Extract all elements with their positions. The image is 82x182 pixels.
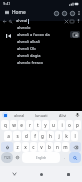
- staticText: Home: [12, 9, 26, 16]
- button[interactable]: Search: [69, 152, 81, 163]
- staticText: alveolo fresco: [17, 60, 43, 65]
- button[interactable]: e: [18, 120, 25, 130]
- button[interactable]: Previous track: [3, 32, 13, 40]
- staticText: k: [65, 133, 68, 139]
- staticText: z: [16, 144, 19, 150]
- staticText: e: [20, 122, 23, 128]
- button[interactable]: Home: [28, 166, 55, 182]
- staticText: q: [4, 122, 7, 128]
- button[interactable]: Recents: [55, 166, 82, 182]
- button[interactable]: alveolo fresco: [0, 59, 82, 66]
- button[interactable]: b: [46, 142, 53, 152]
- staticText: j: [58, 133, 60, 139]
- button[interactable]: Gboard settings: [2, 112, 8, 118]
- button[interactable]: Clear: [63, 18, 69, 24]
- button[interactable]: Voice search: [75, 18, 81, 24]
- button[interactable]: a: [4, 131, 12, 141]
- button[interactable]: More options: [76, 10, 81, 15]
- button[interactable]: n: [54, 142, 61, 152]
- staticText: alveal: [16, 18, 28, 24]
- button[interactable]: i: [58, 120, 65, 130]
- staticText: r: [29, 122, 31, 128]
- button[interactable]: o: [66, 120, 73, 130]
- button[interactable]: Menu: [3, 9, 10, 16]
- button[interactable]: Shift: [1, 142, 13, 152]
- staticText: i: [61, 122, 63, 128]
- staticText: alveoli Ob: [17, 46, 36, 51]
- staticText: d: [25, 133, 28, 139]
- button[interactable]: t: [34, 120, 41, 130]
- button[interactable]: v: [38, 142, 45, 152]
- staticText: v: [40, 144, 43, 150]
- button[interactable]: l: [71, 131, 78, 141]
- staticText: Alivi: [59, 113, 67, 118]
- button[interactable]: Account 2: [68, 9, 76, 17]
- staticText: alveoli dagia: [17, 53, 41, 58]
- button[interactable]: Picture in picture: [70, 31, 80, 38]
- button[interactable]: alveoli dagia: [0, 52, 82, 59]
- button[interactable]: g: [39, 131, 46, 141]
- staticText: x: [24, 144, 27, 150]
- button[interactable]: u: [50, 120, 57, 130]
- staticText: w: [12, 122, 16, 128]
- button[interactable]: j: [55, 131, 62, 141]
- button[interactable]: Voice input: [74, 112, 80, 118]
- staticText: ?123: [4, 156, 11, 160]
- button[interactable]: Account 0: [52, 9, 60, 17]
- button[interactable]: alveoli a fuoco da: [0, 31, 82, 38]
- button[interactable]: q: [1, 120, 9, 130]
- button[interactable]: Keyboard: [69, 18, 75, 24]
- button[interactable]: z: [14, 142, 21, 152]
- staticText: y: [44, 122, 47, 128]
- staticText: English: [36, 156, 47, 160]
- staticText: 9:41: [3, 1, 11, 6]
- button[interactable]: w: [10, 120, 17, 130]
- button[interactable]: Hide keyboard: [0, 166, 28, 182]
- button[interactable]: f: [31, 131, 38, 141]
- staticText: t: [37, 122, 39, 128]
- staticText: lunuati: [35, 113, 48, 118]
- staticText: alveolo: [17, 25, 31, 30]
- button[interactable]: .: [61, 152, 68, 163]
- button[interactable]: Backspace: [70, 142, 81, 152]
- button[interactable]: alveoli Ob: [0, 45, 82, 52]
- staticText: p: [76, 122, 79, 128]
- button[interactable]: English: [22, 152, 60, 163]
- staticText: g: [41, 133, 44, 139]
- button[interactable]: Back: [1, 18, 7, 24]
- staticText: alveoli a fuoco da: [17, 32, 50, 37]
- staticText: f: [34, 133, 36, 139]
- staticText: l: [74, 133, 76, 139]
- button[interactable]: c: [30, 142, 37, 152]
- staticText: o: [68, 122, 71, 128]
- button[interactable]: alveoli alkali: [0, 38, 82, 45]
- button[interactable]: alveolo: [0, 24, 82, 31]
- button[interactable]: h: [47, 131, 54, 141]
- button[interactable]: r: [26, 120, 33, 130]
- staticText: m: [63, 144, 68, 150]
- staticText: alveal: [14, 113, 25, 118]
- staticText: h: [49, 133, 52, 139]
- button[interactable]: ?123: [1, 152, 13, 163]
- staticText: u: [52, 122, 55, 128]
- button[interactable]: k: [63, 131, 70, 141]
- button[interactable]: p: [74, 120, 81, 130]
- button[interactable]: s: [13, 131, 21, 141]
- staticText: n: [56, 144, 59, 150]
- button[interactable]: Search: [7, 18, 13, 24]
- button[interactable]: m: [62, 142, 69, 152]
- button[interactable]: Account 1: [60, 9, 68, 17]
- staticText: c: [32, 144, 35, 150]
- staticText: s: [16, 133, 19, 139]
- staticText: a: [7, 133, 10, 139]
- staticText: alveoli alkali: [17, 39, 40, 44]
- staticText: .: [64, 155, 66, 160]
- button[interactable]: Emoji: [14, 152, 21, 163]
- staticText: b: [48, 144, 51, 150]
- button[interactable]: y: [42, 120, 49, 130]
- button[interactable]: x: [22, 142, 29, 152]
- button[interactable]: d: [22, 131, 30, 141]
